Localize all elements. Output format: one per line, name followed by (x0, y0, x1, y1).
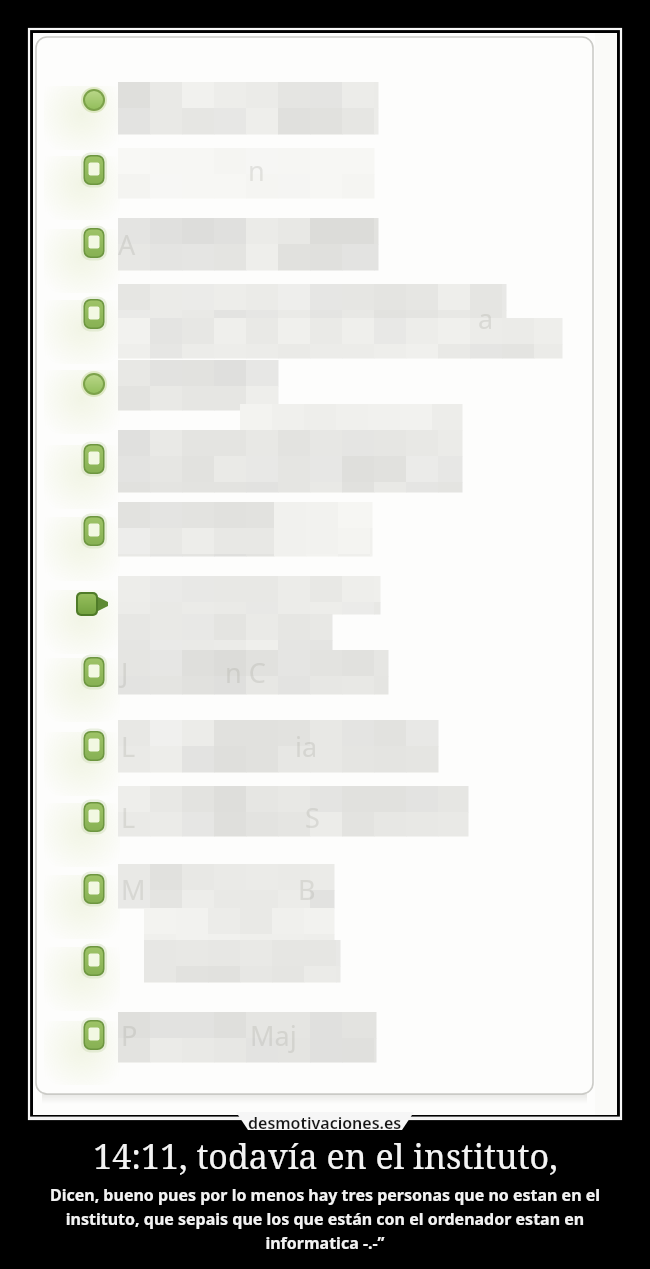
staticText: B (298, 871, 316, 908)
staticText: Maj (250, 1017, 297, 1054)
staticText: 14:11, todavía en el instituto, (93, 1133, 558, 1179)
staticText: S (305, 799, 320, 836)
staticText: n (248, 152, 265, 189)
staticText: L (121, 728, 136, 765)
staticText: n C (225, 654, 266, 691)
staticText: A (118, 226, 136, 263)
staticText: J (121, 654, 129, 691)
staticText: a (478, 300, 494, 337)
staticText: Dicen, bueno pues por lo menos hay tres … (0, 1184, 650, 1254)
staticText: M (121, 871, 146, 908)
staticText: P (121, 1017, 138, 1054)
staticText: L (121, 799, 136, 836)
staticText: ia (295, 728, 318, 765)
staticText: desmotivaciones.es (248, 1112, 402, 1134)
button[interactable]: desmotivaciones.es (248, 1112, 402, 1134)
